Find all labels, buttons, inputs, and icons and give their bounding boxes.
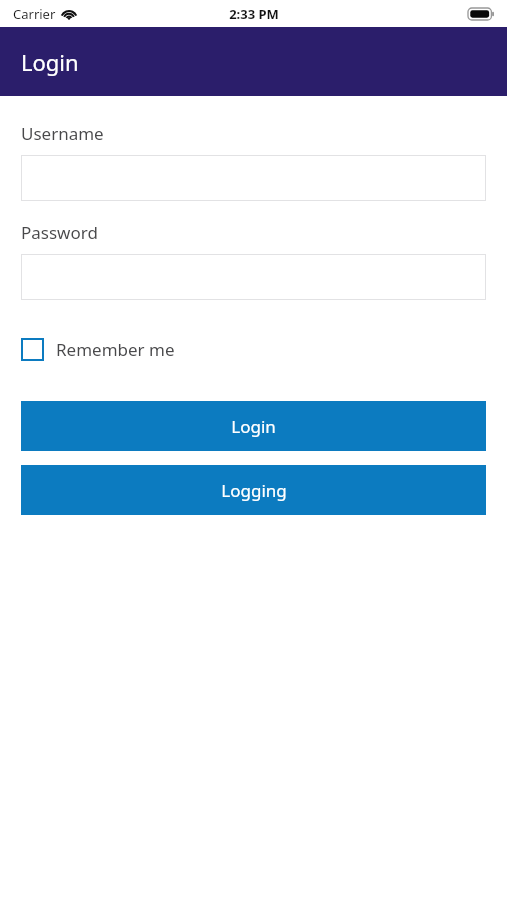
staticText: Logging — [221, 479, 287, 502]
staticText: Username — [21, 122, 104, 145]
button[interactable] — [21, 155, 486, 201]
button[interactable] — [21, 254, 486, 300]
staticText: Login — [21, 47, 79, 77]
staticText: Password — [21, 221, 98, 244]
staticText: Carrier — [13, 5, 56, 23]
staticText: Login — [231, 415, 276, 438]
button[interactable]: Logging — [21, 465, 486, 515]
staticText: Remember me — [56, 338, 175, 361]
button[interactable]: Login — [21, 401, 486, 451]
staticText: 2:33 PM — [229, 5, 279, 23]
button[interactable]: Remember me — [21, 336, 175, 363]
